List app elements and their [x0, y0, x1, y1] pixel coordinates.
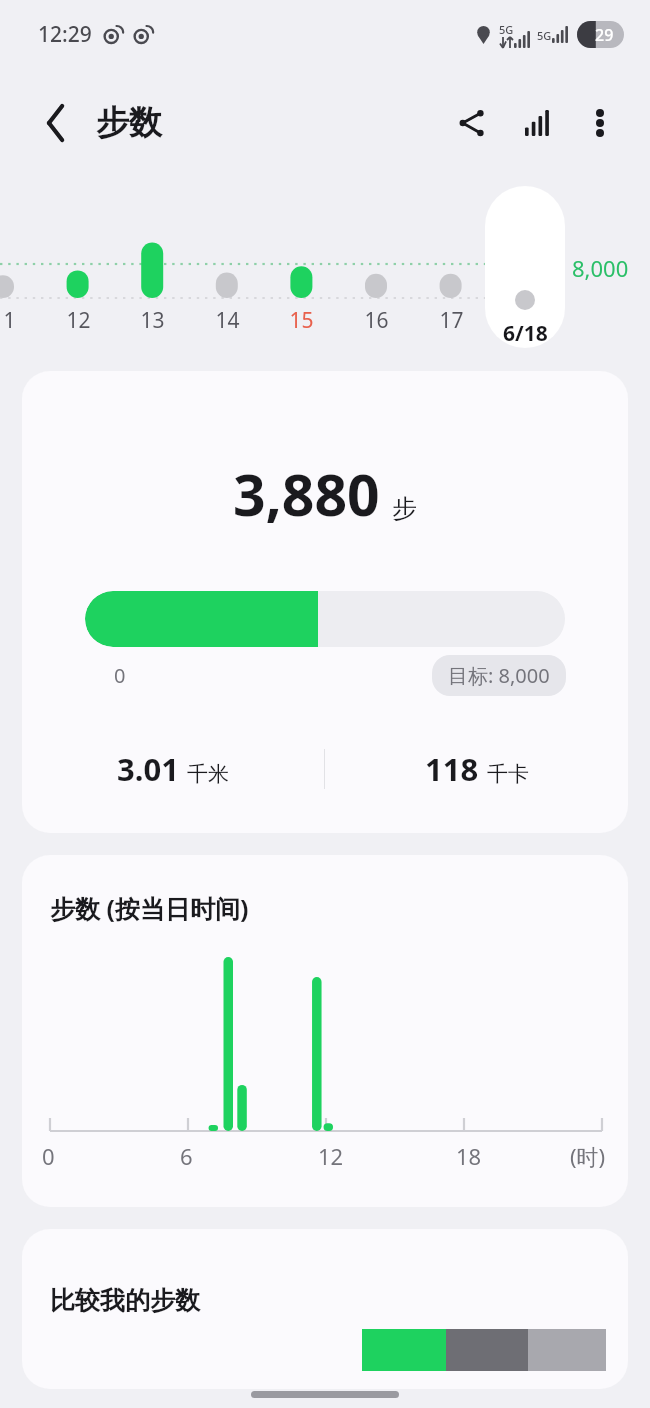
staticText: 3.01 — [117, 748, 179, 790]
staticText: 29 — [595, 24, 614, 46]
button[interactable]: More options — [572, 95, 628, 151]
staticText: 千卡 — [487, 761, 529, 787]
button[interactable]: 步数 (按当日时间) — [22, 855, 628, 1207]
staticText: 0 — [42, 1141, 55, 1171]
staticText: 6 — [180, 1141, 193, 1171]
staticText: 3,880 — [233, 455, 380, 533]
button[interactable]: 12 — [41, 306, 115, 346]
staticText: 5G — [499, 22, 514, 37]
staticText: 118 — [425, 748, 479, 790]
button[interactable]: 16 — [339, 306, 413, 346]
staticText: 16 — [364, 306, 389, 335]
button[interactable]: Share — [444, 95, 500, 151]
button[interactable]: 6/18 — [485, 186, 565, 348]
staticText: 12 — [66, 306, 91, 335]
staticText: 目标: 8,000 — [448, 662, 550, 689]
staticText: 比较我的步数 — [50, 1285, 200, 1316]
staticText: 12 — [318, 1141, 344, 1171]
staticText: 步 — [392, 493, 417, 524]
button[interactable]: 3.01 — [22, 748, 324, 790]
staticText: (时) — [570, 1141, 606, 1171]
staticText: 12:29 — [38, 20, 92, 49]
button[interactable]: 比较我的步数 — [22, 1229, 628, 1389]
staticText: 15 — [289, 306, 314, 335]
staticText: 5G — [537, 28, 552, 43]
staticText: 步数 (按当日时间) — [50, 891, 249, 925]
staticText: 步数 — [96, 102, 162, 144]
button[interactable]: 15 — [264, 306, 338, 346]
button[interactable]: 11 — [0, 306, 40, 346]
staticText: 6/18 — [503, 319, 548, 348]
staticText: 14 — [215, 306, 240, 335]
button[interactable]: 118 — [325, 748, 628, 790]
staticText: 8,000 — [572, 253, 629, 283]
button[interactable]: 17 — [414, 306, 488, 346]
button[interactable]: 目标: 8,000 — [448, 662, 550, 689]
button[interactable]: 13 — [115, 306, 189, 346]
button[interactable]: 14 — [190, 306, 264, 346]
staticText: 13 — [140, 306, 165, 335]
staticText: 千米 — [187, 761, 229, 787]
button[interactable]: Back — [30, 97, 82, 149]
staticText: 0 — [114, 662, 126, 689]
staticText: 18 — [456, 1141, 482, 1171]
staticText: 17 — [439, 306, 464, 335]
staticText: 11 — [0, 306, 16, 335]
button[interactable]: Trends — [510, 95, 566, 151]
button[interactable]: 3,880 — [22, 371, 628, 833]
